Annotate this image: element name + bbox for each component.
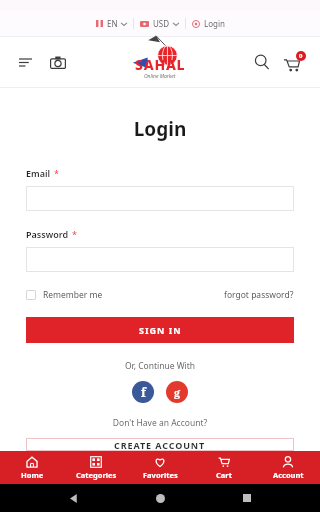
staticText: SAHAL <box>135 55 186 74</box>
staticText: f <box>141 384 146 400</box>
button[interactable]: Continue with Google <box>166 381 188 403</box>
staticText: Categories <box>76 470 117 480</box>
staticText: Remember me <box>43 289 103 301</box>
button[interactable]: EN <box>90 15 133 32</box>
button[interactable]: Home <box>147 485 173 511</box>
staticText: Online Market <box>144 73 176 80</box>
button[interactable]: Remember me <box>26 286 103 304</box>
button[interactable] <box>26 247 294 272</box>
button[interactable]: Categories <box>64 451 128 484</box>
button[interactable]: Login <box>186 15 231 32</box>
staticText: Don't Have an Account? <box>26 417 294 429</box>
staticText: Account <box>273 470 304 480</box>
button[interactable]: CREATE ACCOUNT <box>26 438 294 451</box>
staticText: Cart <box>216 470 232 480</box>
button[interactable]: Continue with Facebook <box>132 381 154 403</box>
button[interactable]: Account <box>256 451 320 484</box>
staticText: Password <box>26 228 69 240</box>
staticText: SIGN IN <box>139 324 182 336</box>
button[interactable]: Menu <box>14 51 36 73</box>
staticText: CREATE ACCOUNT <box>114 439 206 451</box>
staticText: USD <box>153 18 170 29</box>
staticText: Or, Continue With <box>26 360 294 372</box>
button[interactable] <box>26 186 294 211</box>
button[interactable]: Home <box>0 451 64 484</box>
button[interactable]: Search <box>250 50 274 74</box>
button[interactable]: Recents <box>234 485 260 511</box>
button[interactable]: Back <box>61 485 87 511</box>
staticText: 0 <box>299 52 303 60</box>
staticText: EN <box>107 18 118 29</box>
staticText: Email <box>26 167 51 179</box>
staticText: g <box>174 385 181 400</box>
button[interactable]: Cart <box>192 451 256 484</box>
staticText: Login <box>26 116 294 142</box>
button[interactable]: Camera search <box>46 50 70 74</box>
staticText: Favorites <box>143 470 178 480</box>
staticText: Login <box>204 18 225 29</box>
button[interactable]: Cart <box>282 49 308 75</box>
button[interactable]: forgot password? <box>224 286 294 304</box>
button[interactable]: USD <box>134 15 185 32</box>
staticText: * <box>54 167 59 179</box>
staticText: Home <box>21 470 44 480</box>
button[interactable]: Favorites <box>128 451 192 484</box>
staticText: * <box>72 228 77 240</box>
button[interactable]: SIGN IN <box>26 317 294 343</box>
